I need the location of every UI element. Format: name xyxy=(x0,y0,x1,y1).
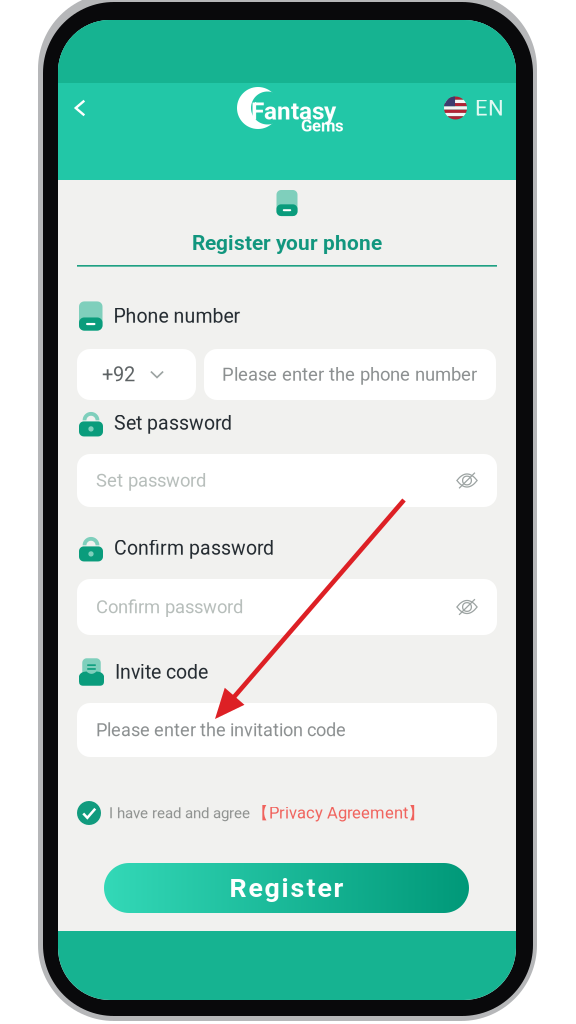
staticText: Confirm password xyxy=(96,596,243,618)
staticText: Set password xyxy=(96,470,206,491)
button[interactable]: Show password xyxy=(456,472,478,489)
staticText: Phone number xyxy=(113,305,240,327)
staticText: Gems xyxy=(301,116,344,135)
staticText: Invite code xyxy=(115,661,208,683)
staticText: Confirm password xyxy=(114,537,274,559)
button[interactable]: Agree to the privacy agreement xyxy=(77,801,101,825)
staticText: +92 xyxy=(102,363,135,386)
staticText: Register your phone xyxy=(192,231,382,255)
button[interactable]: Show confirm password xyxy=(456,599,478,615)
button[interactable]: +92 xyxy=(77,349,196,400)
staticText: EN xyxy=(475,95,504,121)
staticText: 【Privacy Agreement】 xyxy=(252,803,425,823)
button[interactable]: 【Privacy Agreement】 xyxy=(250,803,425,823)
staticText: I have read and agree xyxy=(109,804,250,822)
button[interactable]: Back xyxy=(58,86,102,130)
button[interactable]: Language: English xyxy=(444,88,504,128)
staticText: Please enter the phone number xyxy=(222,364,477,385)
staticText: Set password xyxy=(114,412,232,434)
staticText: Register xyxy=(229,872,343,904)
button[interactable]: Register xyxy=(104,863,469,913)
staticText: Fantasy xyxy=(251,97,336,125)
staticText: Please enter the invitation code xyxy=(96,719,346,741)
